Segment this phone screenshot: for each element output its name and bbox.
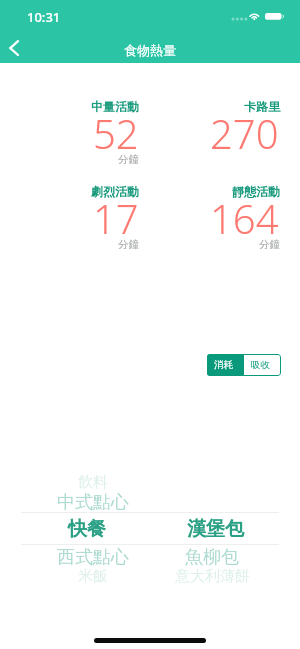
button[interactable]: 飲料 <box>18 469 168 495</box>
staticText: 17 <box>93 191 139 245</box>
staticText: 快餐 <box>68 517 106 541</box>
staticText: 意大利薄餅 <box>175 567 250 586</box>
button[interactable]: Back <box>0 34 28 62</box>
staticText: 分鐘 <box>118 238 139 251</box>
button[interactable]: 中式點心 <box>18 489 168 515</box>
staticText: 270 <box>210 106 279 160</box>
staticText: 食物熱量 <box>124 42 176 58</box>
staticText: 靜態活動 <box>232 184 280 199</box>
staticText: 魚柳包 <box>185 546 239 569</box>
staticText: 消耗 <box>214 359 233 371</box>
button[interactable]: 意大利薄餅 <box>137 563 287 589</box>
button[interactable]: 消耗 <box>207 354 244 376</box>
button[interactable]: 魚柳包 <box>137 544 287 570</box>
staticText: 漢堡包 <box>187 517 244 541</box>
staticText: 劇烈活動 <box>91 184 139 199</box>
staticText: 分鐘 <box>118 153 139 166</box>
staticText: 米飯 <box>78 567 108 586</box>
staticText: 中量活動 <box>91 99 139 114</box>
staticText: 吸收 <box>251 359 270 371</box>
button[interactable]: 吸收 <box>244 354 281 376</box>
staticText: 52 <box>93 106 139 160</box>
button[interactable]: 漢堡包 <box>140 516 290 542</box>
staticText: 卡路里 <box>244 99 280 114</box>
button[interactable]: 西式點心 <box>18 544 168 570</box>
other: Signal, Wi-Fi and battery status <box>228 8 288 24</box>
staticText: 西式點心 <box>57 546 129 569</box>
staticText: 中式點心 <box>57 491 129 514</box>
button[interactable]: 卡路里 <box>130 99 280 171</box>
button[interactable]: 快餐 <box>12 516 162 542</box>
button[interactable]: 中量活動 <box>0 99 139 171</box>
button[interactable]: 劇烈活動 <box>0 184 139 256</box>
staticText: 10:31 <box>27 8 61 26</box>
staticText: 164 <box>210 191 279 245</box>
button[interactable]: 米飯 <box>18 563 168 589</box>
staticText: 飲料 <box>78 473 108 492</box>
staticText: 分鐘 <box>259 238 280 251</box>
button[interactable]: 靜態活動 <box>130 184 280 256</box>
